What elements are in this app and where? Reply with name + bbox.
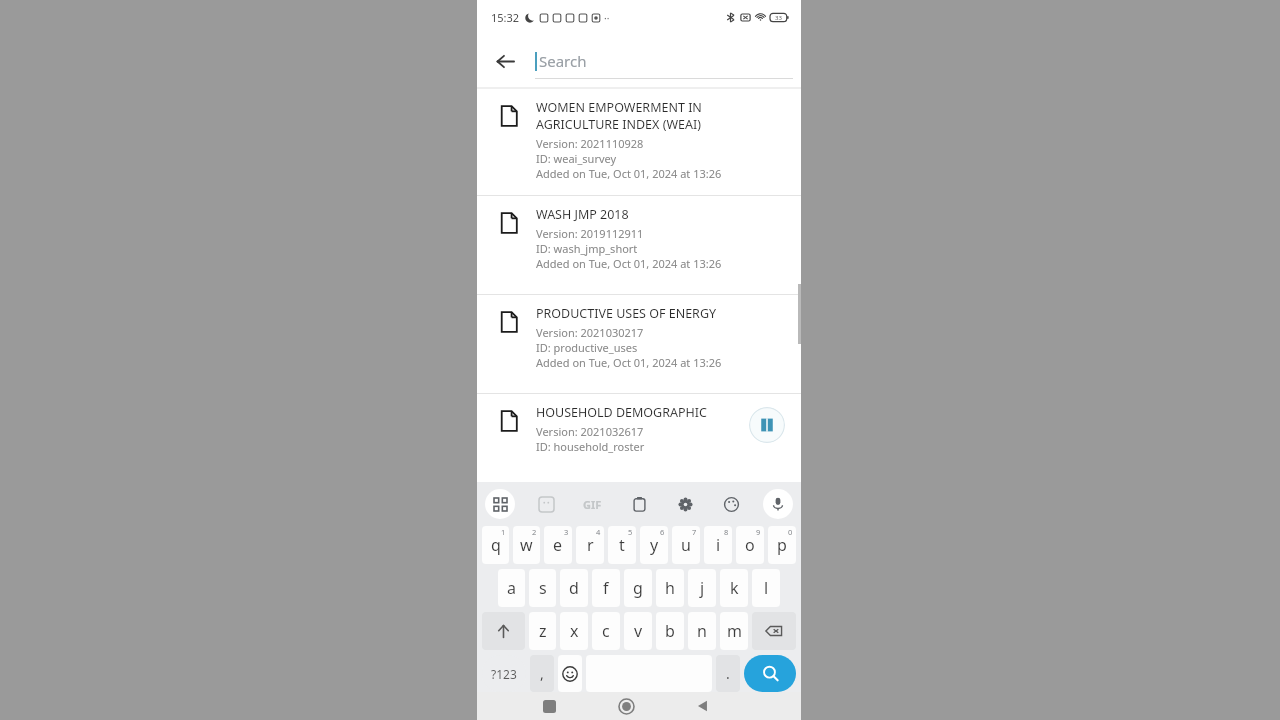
button[interactable]: m (720, 612, 748, 650)
staticText: h (665, 577, 675, 599)
button[interactable]: Back (684, 692, 722, 720)
staticText: Version: 2021032617 (536, 424, 644, 439)
button[interactable]: HOUSEHOLD DEMOGRAPHIC (477, 394, 801, 482)
button[interactable]: r (576, 526, 604, 564)
button[interactable]: h (656, 569, 684, 607)
button[interactable]: e (544, 526, 572, 564)
button[interactable]: p (768, 526, 796, 564)
staticText: Search (539, 51, 587, 71)
staticText: r (587, 534, 594, 556)
button[interactable]: , (530, 655, 554, 692)
staticText: Version: 2021110928 (536, 136, 644, 151)
staticText: . (726, 664, 730, 683)
staticText: Added on Tue, Oct 01, 2024 at 13:26 (536, 355, 722, 370)
button[interactable]: Shift (482, 612, 525, 650)
staticText: u (681, 534, 691, 556)
button[interactable]: t (608, 526, 636, 564)
staticText: y (650, 534, 659, 556)
button[interactable]: a (498, 569, 525, 607)
staticText: j (700, 577, 705, 599)
staticText: 7 (692, 527, 697, 537)
button[interactable]: u (672, 526, 700, 564)
staticText: PRODUCTIVE USES OF ENERGY (536, 305, 717, 322)
staticText: 1 (501, 527, 506, 537)
button[interactable]: Back (487, 43, 523, 79)
button[interactable]: Emoji (558, 655, 582, 692)
button[interactable]: WOMEN EMPOWERMENT IN (477, 89, 801, 195)
button[interactable]: Open form (749, 407, 785, 443)
staticText: 6 (660, 527, 665, 537)
staticText: i (716, 534, 721, 556)
staticText: z (539, 620, 547, 642)
staticText: HOUSEHOLD DEMOGRAPHIC (536, 404, 707, 421)
staticText: 5 (628, 527, 633, 537)
staticText: n (697, 620, 707, 642)
button[interactable]: y (640, 526, 668, 564)
button[interactable]: Stickers (532, 490, 560, 518)
staticText: v (634, 620, 643, 642)
button[interactable]: z (529, 612, 556, 650)
button[interactable]: ?123 (482, 655, 526, 692)
staticText: w (520, 534, 533, 556)
button[interactable]: Home (607, 692, 645, 720)
button[interactable]: i (704, 526, 732, 564)
staticText: ID: wash_jmp_short (536, 241, 638, 256)
staticText: ID: productive_uses (536, 340, 638, 355)
button[interactable]: w (513, 526, 540, 564)
staticText: q (491, 534, 501, 556)
button[interactable]: . (716, 655, 740, 692)
button[interactable]: Themes (717, 490, 745, 518)
button[interactable]: q (482, 526, 509, 564)
button[interactable]: n (688, 612, 716, 650)
staticText: , (540, 664, 544, 683)
button[interactable]: Voice input (763, 489, 793, 519)
staticText: Version: 2021030217 (536, 325, 644, 340)
staticText: 4 (596, 527, 601, 537)
button[interactable]: s (529, 569, 556, 607)
button[interactable]: GIF (577, 489, 607, 519)
staticText: WASH JMP 2018 (536, 206, 629, 223)
staticText: a (507, 577, 516, 599)
button[interactable]: c (592, 612, 620, 650)
button[interactable]: d (560, 569, 588, 607)
button[interactable]: Recents (530, 692, 568, 720)
staticText: 15:32 (491, 10, 520, 25)
button[interactable]: Search (535, 41, 793, 81)
button[interactable]: f (592, 569, 620, 607)
button[interactable]: x (560, 612, 588, 650)
staticText: 3 (564, 527, 569, 537)
staticText: d (569, 577, 579, 599)
staticText: 33 (775, 14, 782, 22)
staticText: Added on Tue, Oct 01, 2024 at 13:26 (536, 166, 722, 181)
button[interactable]: b (656, 612, 684, 650)
staticText: Added on Tue, Oct 01, 2024 at 13:26 (536, 256, 722, 271)
staticText: c (602, 620, 610, 642)
staticText: s (539, 577, 547, 599)
staticText: e (553, 534, 563, 556)
button[interactable]: o (736, 526, 764, 564)
button[interactable]: Settings (671, 490, 699, 518)
staticText: 8 (724, 527, 729, 537)
button[interactable]: j (688, 569, 716, 607)
staticText: k (730, 577, 739, 599)
button[interactable]: PRODUCTIVE USES OF ENERGY (477, 295, 801, 393)
button[interactable]: v (624, 612, 652, 650)
staticText: ID: weai_survey (536, 151, 617, 166)
staticText: GIF (583, 497, 602, 512)
button[interactable]: k (720, 569, 748, 607)
staticText: t (619, 534, 625, 556)
staticText: o (745, 534, 755, 556)
button[interactable]: Search (744, 655, 796, 692)
button[interactable]: Backspace (752, 612, 796, 650)
button[interactable]: WASH JMP 2018 (477, 196, 801, 294)
staticText: g (633, 577, 643, 599)
button[interactable]: Clipboard (625, 490, 653, 518)
button[interactable]: g (624, 569, 652, 607)
button[interactable]: Toolbar (485, 489, 515, 519)
staticText: Version: 2019112911 (536, 226, 644, 241)
staticText: ·· (604, 11, 610, 25)
staticText: 0 (788, 527, 793, 537)
staticText: ID: household_roster (536, 439, 645, 454)
button[interactable]: l (752, 569, 780, 607)
